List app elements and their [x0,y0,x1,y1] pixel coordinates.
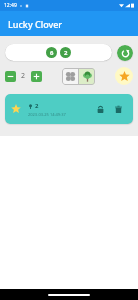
staticText: 2 [21,71,26,81]
staticText: 2023-03-25 14:49:37 [28,112,66,117]
button[interactable]: Clover mode [62,68,78,85]
button[interactable]: 6 [46,47,57,58]
staticText: 6 [50,49,54,57]
button[interactable]: Refresh [117,45,133,61]
button[interactable]: 2 [60,47,71,58]
button[interactable]: Increase [31,71,42,82]
staticText: 2 [35,102,39,110]
button[interactable]: Lock [93,102,107,116]
staticText: 12:49 [4,2,17,9]
button[interactable]: 2 [5,94,133,124]
staticText: 2 [64,49,68,57]
button[interactable]: Favorite [115,67,133,85]
staticText: Lucky Clover [8,18,63,30]
button[interactable]: Delete [111,102,125,116]
button[interactable]: 6 [5,44,112,61]
button[interactable]: Decrease [5,71,16,82]
button[interactable]: Tree mode [79,68,95,85]
